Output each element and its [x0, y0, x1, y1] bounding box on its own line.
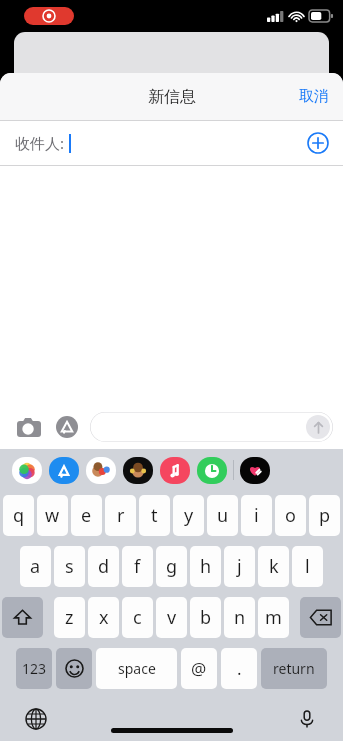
staticText: o — [285, 503, 296, 528]
staticText: n — [234, 605, 246, 630]
button[interactable]: u — [207, 495, 238, 536]
staticText: t — [151, 503, 158, 528]
staticText: p — [319, 503, 331, 528]
button[interactable]: p — [309, 495, 340, 536]
staticText: c — [133, 605, 142, 630]
staticText: s — [65, 554, 74, 579]
button[interactable]: g — [156, 546, 187, 587]
button[interactable]: space — [96, 648, 177, 689]
staticText: w — [45, 503, 60, 528]
staticText: . — [237, 657, 242, 680]
button[interactable]: x — [88, 597, 119, 638]
staticText: x — [99, 605, 109, 630]
staticText: e — [81, 503, 92, 528]
button[interactable]: Clock — [197, 457, 227, 484]
button[interactable]: y — [173, 495, 204, 536]
staticText: z — [65, 605, 74, 630]
button[interactable]: . — [221, 648, 257, 689]
button[interactable]: Music — [160, 457, 190, 484]
staticText: space — [118, 659, 156, 678]
button[interactable]: f — [122, 546, 153, 587]
staticText: a — [30, 554, 41, 579]
staticText: h — [200, 554, 212, 579]
staticText: return — [273, 659, 315, 678]
button[interactable]: d — [88, 546, 119, 587]
staticText: v — [167, 605, 177, 630]
button[interactable]: v — [156, 597, 187, 638]
staticText: q — [13, 503, 25, 528]
button[interactable]: w — [37, 495, 68, 536]
button[interactable]: n — [224, 597, 255, 638]
staticText: b — [200, 605, 212, 630]
staticText: @ — [191, 657, 207, 680]
button[interactable]: Memoji — [123, 457, 153, 484]
button[interactable]: e — [71, 495, 102, 536]
button[interactable]: Photos — [12, 457, 42, 484]
button[interactable] — [300, 597, 341, 638]
staticText: g — [166, 554, 178, 579]
button[interactable]: j — [224, 546, 255, 587]
button[interactable]: Change keyboard — [22, 705, 50, 733]
staticText: f — [134, 554, 141, 579]
button[interactable]: a — [20, 546, 51, 587]
button[interactable]: Send — [90, 412, 333, 442]
button[interactable]: k — [258, 546, 289, 587]
button[interactable]: App Store — [52, 412, 82, 442]
button[interactable]: q — [3, 495, 34, 536]
staticText: d — [98, 554, 110, 579]
button[interactable]: b — [190, 597, 221, 638]
staticText: 123 — [22, 659, 47, 678]
button[interactable]: r — [105, 495, 136, 536]
button[interactable]: Memoji stickers — [86, 457, 116, 484]
staticText: 取消 — [299, 87, 329, 106]
button[interactable] — [56, 648, 92, 689]
button[interactable]: @ — [181, 648, 217, 689]
button[interactable]: 取消 — [293, 81, 335, 112]
button[interactable]: App Store — [49, 457, 79, 484]
button[interactable] — [2, 597, 43, 638]
button[interactable]: Dictation — [293, 705, 321, 733]
staticText: 收件人: — [15, 133, 65, 153]
button[interactable]: Recording — [24, 7, 74, 25]
staticText: k — [269, 554, 279, 579]
button[interactable]: m — [258, 597, 289, 638]
button[interactable]: return — [261, 648, 327, 689]
button[interactable]: i — [241, 495, 272, 536]
button[interactable]: z — [54, 597, 85, 638]
button[interactable]: Send — [306, 415, 330, 439]
button[interactable]: h — [190, 546, 221, 587]
staticText: i — [254, 503, 259, 528]
button[interactable]: Add contact — [303, 128, 333, 158]
button[interactable]: 123 — [16, 648, 52, 689]
button[interactable]: s — [54, 546, 85, 587]
staticText: u — [217, 503, 229, 528]
button[interactable]: t — [139, 495, 170, 536]
staticText: j — [237, 554, 242, 579]
staticText: r — [117, 503, 125, 528]
staticText: 新信息 — [148, 87, 196, 107]
button[interactable]: l — [292, 546, 323, 587]
button[interactable]: Fitness — [240, 457, 270, 484]
button[interactable]: o — [275, 495, 306, 536]
staticText: l — [305, 554, 310, 579]
staticText: m — [265, 605, 282, 630]
button[interactable]: c — [122, 597, 153, 638]
staticText: y — [184, 503, 194, 528]
button[interactable]: Camera — [14, 412, 44, 442]
